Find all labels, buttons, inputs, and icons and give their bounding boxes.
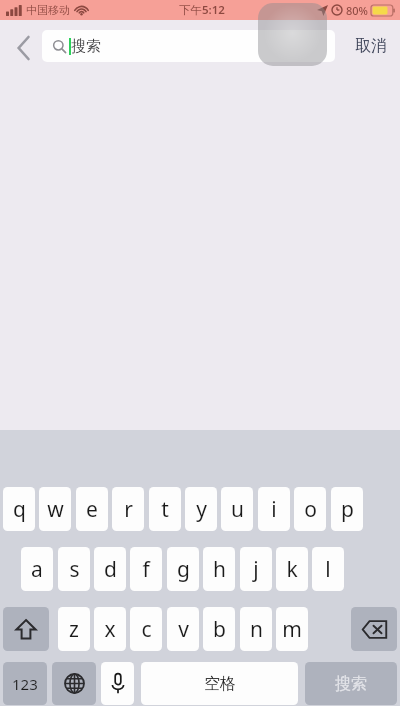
- button[interactable]: 搜索: [305, 662, 397, 705]
- button[interactable]: 取消: [345, 30, 397, 62]
- staticText: n: [250, 615, 263, 644]
- staticText: 搜索: [335, 674, 367, 694]
- staticText: t: [161, 495, 169, 524]
- button[interactable]: v: [167, 607, 199, 651]
- staticText: 取消: [355, 36, 387, 56]
- staticText: 下午5:12: [179, 2, 225, 18]
- staticText: h: [213, 555, 226, 584]
- button[interactable]: e: [76, 487, 108, 531]
- button[interactable]: k: [276, 547, 308, 591]
- button[interactable]: j: [240, 547, 272, 591]
- staticText: a: [31, 555, 43, 584]
- staticText: 80%: [346, 3, 368, 18]
- button[interactable]: p: [331, 487, 363, 531]
- button[interactable]: 语音输入: [101, 662, 134, 705]
- button[interactable]: c: [130, 607, 162, 651]
- staticText: u: [231, 495, 244, 524]
- button[interactable]: b: [203, 607, 235, 651]
- button[interactable]: u: [221, 487, 253, 531]
- staticText: k: [286, 555, 298, 584]
- staticText: m: [282, 615, 302, 644]
- staticText: j: [253, 555, 259, 584]
- button[interactable]: y: [185, 487, 217, 531]
- staticText: z: [69, 615, 79, 644]
- staticText: e: [86, 495, 98, 524]
- staticText: 搜索: [71, 37, 101, 56]
- button[interactable]: n: [240, 607, 272, 651]
- button[interactable]: l: [312, 547, 344, 591]
- button[interactable]: q: [3, 487, 35, 531]
- button[interactable]: 切换输入法: [52, 662, 96, 705]
- button[interactable]: z: [58, 607, 90, 651]
- staticText: x: [104, 615, 116, 644]
- staticText: o: [304, 495, 317, 524]
- button[interactable]: w: [39, 487, 71, 531]
- staticText: w: [47, 495, 64, 524]
- staticText: l: [325, 555, 331, 584]
- staticText: s: [69, 555, 80, 584]
- staticText: v: [178, 615, 189, 644]
- staticText: i: [271, 495, 277, 524]
- staticText: r: [124, 495, 133, 524]
- button[interactable]: t: [149, 487, 181, 531]
- button[interactable]: s: [58, 547, 90, 591]
- button[interactable]: m: [276, 607, 308, 651]
- button[interactable]: a: [21, 547, 53, 591]
- button[interactable]: d: [94, 547, 126, 591]
- button[interactable]: r: [112, 487, 144, 531]
- staticText: 空格: [204, 674, 236, 694]
- button[interactable]: 搜索: [42, 30, 335, 62]
- staticText: q: [13, 495, 26, 524]
- staticText: b: [213, 615, 226, 644]
- button[interactable]: h: [203, 547, 235, 591]
- button[interactable]: 返回: [6, 30, 42, 66]
- staticText: 123: [12, 674, 38, 694]
- staticText: g: [177, 555, 190, 584]
- button[interactable]: 123: [3, 662, 47, 705]
- button[interactable]: Shift: [3, 607, 49, 651]
- staticText: d: [104, 555, 117, 584]
- staticText: p: [341, 495, 354, 524]
- button[interactable]: f: [130, 547, 162, 591]
- staticText: 中国移动: [26, 3, 70, 17]
- button[interactable]: x: [94, 607, 126, 651]
- button[interactable]: o: [294, 487, 326, 531]
- staticText: c: [141, 615, 152, 644]
- staticText: y: [196, 495, 207, 524]
- button[interactable]: 空格: [141, 662, 298, 705]
- button[interactable]: Backspace: [351, 607, 397, 651]
- button[interactable]: i: [258, 487, 290, 531]
- staticText: f: [142, 555, 150, 584]
- button[interactable]: g: [167, 547, 199, 591]
